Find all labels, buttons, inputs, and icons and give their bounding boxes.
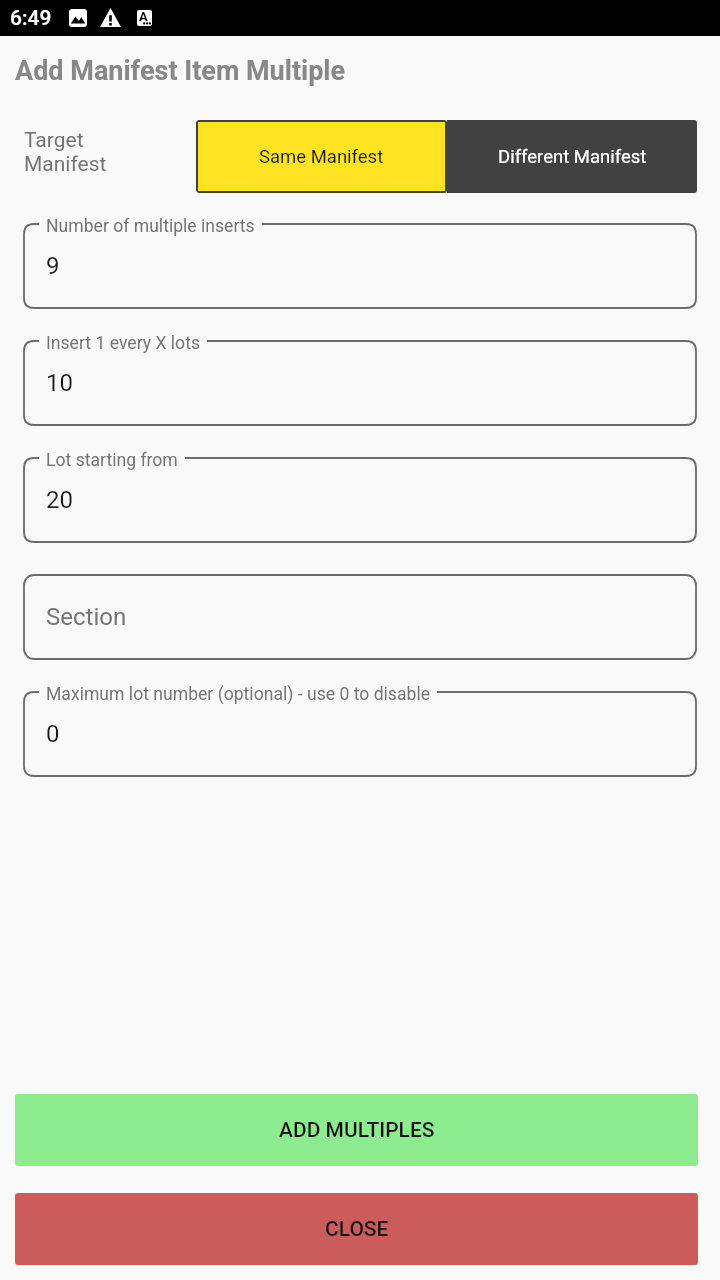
button[interactable]: Lot starting from — [24, 458, 696, 542]
other: Caption notification — [137, 10, 152, 26]
staticText: A — [139, 10, 148, 24]
staticText: 20 — [46, 486, 73, 514]
button[interactable]: Same Manifest — [198, 122, 445, 191]
button[interactable]: Section — [24, 575, 696, 659]
staticText: Target Manifest — [24, 128, 107, 176]
button[interactable]: Maximum lot number (optional) - use 0 to… — [24, 692, 696, 776]
staticText: 9 — [46, 252, 60, 280]
staticText: Section — [46, 603, 127, 631]
other: Screenshot notification — [69, 9, 87, 27]
staticText: 10 — [46, 369, 73, 397]
staticText: Insert 1 every X lots — [46, 333, 200, 354]
staticText: Different Manifest — [498, 146, 647, 168]
button[interactable]: Insert 1 every X lots — [24, 341, 696, 425]
button[interactable]: Different Manifest — [447, 120, 697, 193]
button[interactable]: ADD MULTIPLES — [15, 1094, 698, 1166]
staticText: Add Manifest Item Multiple — [15, 55, 346, 87]
staticText: CLOSE — [325, 1217, 389, 1242]
button[interactable]: CLOSE — [15, 1193, 698, 1265]
staticText: ADD MULTIPLES — [279, 1118, 435, 1143]
staticText: Number of multiple inserts — [46, 216, 255, 237]
staticText: Lot starting from — [46, 450, 178, 471]
staticText: Maximum lot number (optional) - use 0 to… — [46, 684, 430, 705]
button[interactable]: Number of multiple inserts — [24, 224, 696, 308]
other: Warning — [100, 8, 121, 27]
staticText: Same Manifest — [259, 146, 384, 168]
staticText: 0 — [46, 720, 60, 748]
staticText: 6:49 — [10, 6, 52, 31]
